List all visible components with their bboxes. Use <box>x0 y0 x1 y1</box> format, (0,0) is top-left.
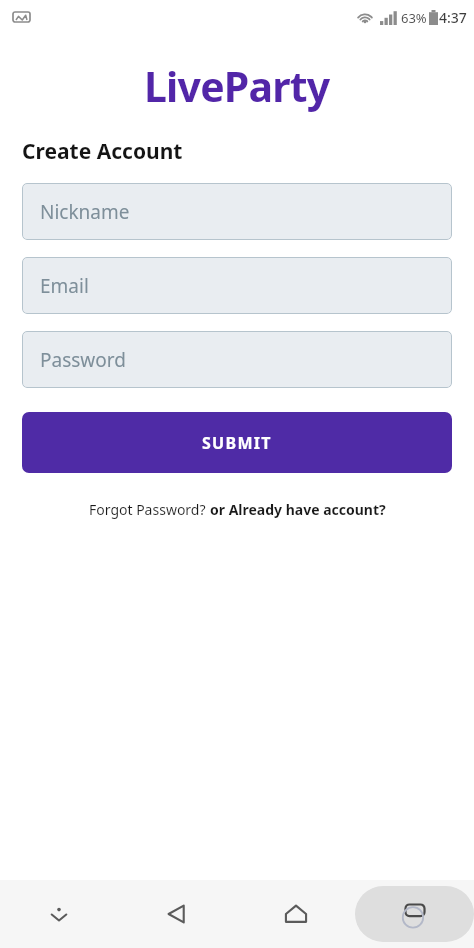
button[interactable]: Password <box>22 331 452 388</box>
staticText: Create Account <box>22 137 183 166</box>
button[interactable]: Email <box>22 257 452 314</box>
button[interactable]: Recents <box>355 886 474 942</box>
staticText: LiveParty <box>144 58 330 114</box>
button[interactable]: Hide keyboard <box>0 880 118 948</box>
button[interactable]: or Already have account? <box>210 500 386 519</box>
button[interactable]: Nickname <box>22 183 452 240</box>
staticText: Password <box>40 347 126 373</box>
button[interactable]: Home <box>236 880 355 948</box>
staticText: Forgot Password? <box>89 500 210 519</box>
staticText: Email <box>40 273 89 299</box>
staticText: SUBMIT <box>202 432 272 454</box>
staticText: or Already have account? <box>210 500 386 519</box>
staticText: 63% <box>401 9 427 27</box>
button[interactable]: Back <box>118 880 236 948</box>
button[interactable]: SUBMIT <box>22 412 452 473</box>
staticText: 4:37 <box>439 8 467 27</box>
button[interactable]: Forgot Password? <box>89 500 210 519</box>
staticText: Nickname <box>40 199 130 225</box>
